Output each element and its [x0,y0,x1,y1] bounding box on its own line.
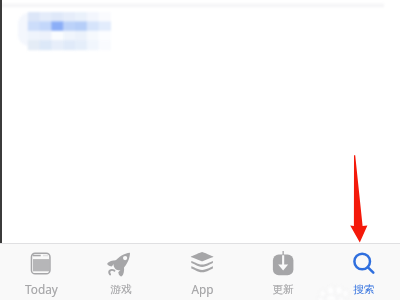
button[interactable]: Today [1,243,81,300]
staticText: App [191,281,214,297]
button[interactable]: App [162,243,242,300]
staticText: 更新 [272,283,294,297]
staticText: 游戏 [110,283,132,297]
button[interactable]: 更新 [243,243,323,300]
staticText: 搜索 [353,283,375,297]
button[interactable]: 游戏 [81,243,161,300]
button[interactable]: 搜索 [324,243,400,300]
staticText: Today [25,281,58,297]
